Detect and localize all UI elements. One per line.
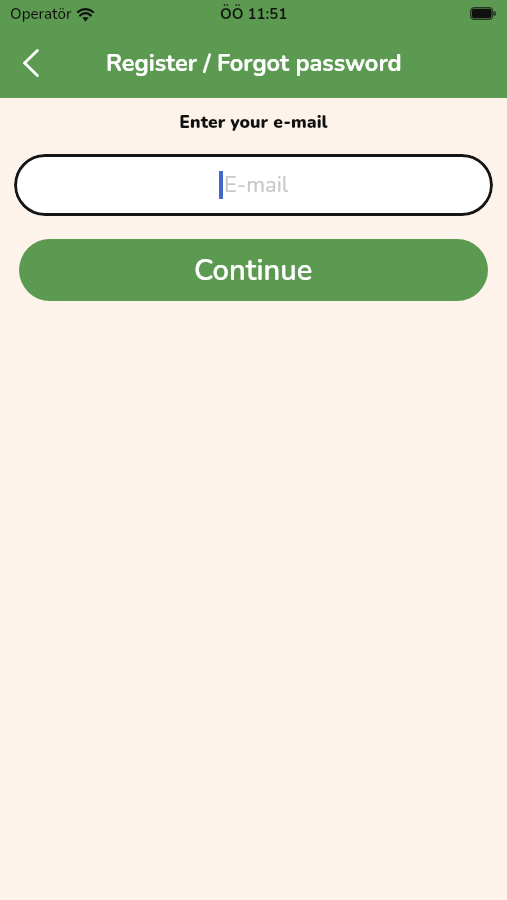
button[interactable]: Back xyxy=(7,39,55,87)
staticText: Operatör xyxy=(10,4,72,24)
button[interactable]: E-mail xyxy=(14,154,493,216)
staticText: Register / Forgot password xyxy=(106,47,402,79)
staticText: E-mail xyxy=(224,170,289,200)
staticText: Continue xyxy=(194,251,313,291)
staticText: Enter your e-mail xyxy=(0,110,507,134)
staticText: ÖÖ 11:51 xyxy=(220,4,288,24)
button[interactable]: Continue xyxy=(19,239,488,301)
